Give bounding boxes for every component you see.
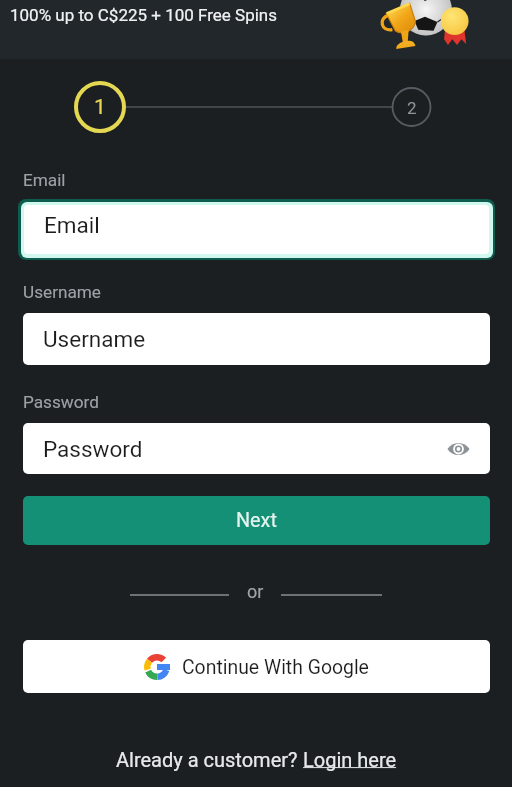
button[interactable]: 1 [76,83,124,131]
button[interactable]: 2 [392,88,431,127]
staticText: or [247,581,264,602]
staticText: 100% up to C$225 + 100 Free Spins [10,5,277,25]
staticText: 2 [407,98,417,118]
staticText: Continue With Google [182,656,369,679]
staticText: Username [23,282,101,302]
staticText: Password [23,392,99,412]
button[interactable]: Show password [442,433,474,465]
button[interactable]: Next [23,496,490,545]
staticText: Email [23,170,66,190]
staticText: Email [44,212,100,238]
button[interactable]: Password [23,423,490,474]
button[interactable]: 100% up to C$225 + 100 Free Spins [0,0,512,59]
staticText: Username [43,326,146,352]
staticText: 1 [94,95,106,120]
staticText: Next [236,509,277,532]
button[interactable]: Email [18,199,495,260]
staticText: Already a customer? [116,748,303,771]
button[interactable]: Login here [303,748,397,771]
staticText: Password [43,436,143,462]
button[interactable]: Username [23,313,490,365]
button[interactable]: Continue With Google [23,640,490,693]
